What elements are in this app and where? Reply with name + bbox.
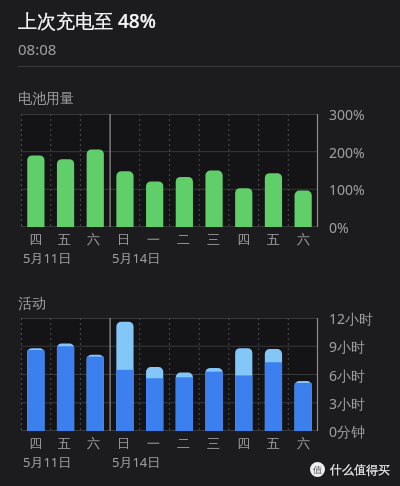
staticText: 100% (329, 180, 365, 199)
button[interactable]: 什么值得买 (310, 462, 390, 477)
staticText: 六 (87, 231, 100, 247)
staticText: 日 (117, 435, 130, 451)
staticText: 0% (329, 218, 349, 237)
staticText: 六 (87, 435, 100, 451)
staticText: 值 (313, 464, 322, 475)
staticText: 四 (237, 435, 250, 451)
button[interactable] (21, 318, 318, 431)
staticText: 五 (58, 231, 71, 247)
staticText: 四 (237, 231, 250, 247)
staticText: 活动 (18, 295, 46, 313)
staticText: 电池用量 (18, 90, 74, 108)
staticText: 300% (329, 105, 365, 124)
staticText: 200% (329, 143, 365, 162)
staticText: 9小时 (329, 337, 366, 356)
staticText: 12小时 (329, 309, 374, 328)
staticText: 一 (147, 435, 160, 451)
staticText: 五 (267, 231, 280, 247)
staticText: 5月14日 (112, 453, 161, 471)
staticText: 5月11日 (23, 453, 72, 471)
staticText: 08:08 (18, 39, 57, 59)
button[interactable]: 上次充电至 48% (0, 0, 400, 66)
staticText: 二 (177, 231, 190, 247)
staticText: 6小时 (329, 366, 366, 385)
button[interactable] (21, 114, 318, 227)
staticText: 六 (297, 435, 310, 451)
staticText: 一 (147, 231, 160, 247)
staticText: 上次充电至 48% (18, 8, 156, 34)
staticText: 五 (58, 435, 71, 451)
staticText: 日 (117, 231, 130, 247)
staticText: 五 (267, 435, 280, 451)
staticText: 0分钟 (329, 422, 366, 441)
staticText: 5月14日 (112, 249, 161, 267)
staticText: 3小时 (329, 394, 366, 413)
staticText: 三 (207, 435, 220, 451)
staticText: 四 (29, 435, 42, 451)
staticText: 什么值得买 (330, 462, 390, 477)
staticText: 5月11日 (23, 249, 72, 267)
staticText: 六 (297, 231, 310, 247)
staticText: 二 (177, 435, 190, 451)
staticText: 四 (29, 231, 42, 247)
staticText: 三 (207, 231, 220, 247)
